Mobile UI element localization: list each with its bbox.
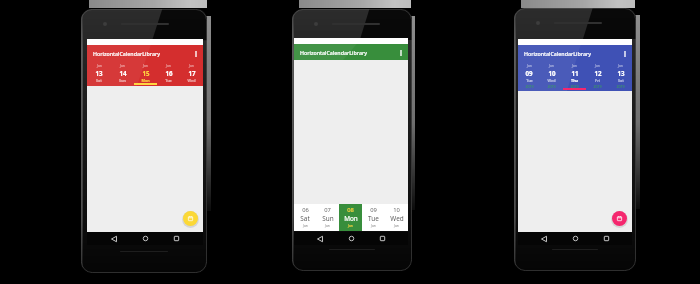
- staticText: 09: [525, 69, 533, 77]
- button[interactable]: Home: [570, 233, 581, 244]
- staticText: 11: [571, 69, 579, 77]
- staticText: Jan: [572, 63, 577, 67]
- button[interactable]: Jan: [586, 61, 609, 90]
- staticText: Tue: [165, 78, 172, 83]
- button[interactable]: Jan: [563, 61, 586, 90]
- button[interactable]: 08: [339, 204, 362, 231]
- button[interactable]: Recent apps: [171, 233, 182, 244]
- staticText: 2019: [570, 84, 579, 89]
- staticText: Jan: [166, 63, 171, 67]
- staticText: 10: [393, 206, 400, 214]
- button[interactable]: Jan: [134, 61, 157, 85]
- staticText: 09: [370, 206, 377, 214]
- button[interactable]: Jan: [157, 61, 180, 85]
- staticText: Sun: [322, 214, 334, 223]
- staticText: 15: [142, 69, 150, 77]
- staticText: 17: [188, 69, 196, 77]
- button[interactable]: Back: [314, 233, 325, 244]
- button[interactable]: More options: [190, 48, 201, 59]
- button[interactable]: Jan: [518, 61, 540, 90]
- staticText: 06: [302, 206, 309, 214]
- staticText: 07: [324, 206, 331, 214]
- staticText: Jan: [394, 223, 399, 227]
- staticText: Mon: [344, 214, 358, 223]
- button[interactable]: Back: [108, 233, 119, 244]
- staticText: HorizontalCalendarLibrary: [93, 50, 160, 57]
- button[interactable]: More options: [395, 47, 406, 58]
- staticText: Jan: [303, 223, 308, 227]
- staticText: Mon: [141, 78, 150, 83]
- staticText: Jan: [595, 63, 600, 67]
- staticText: Sat: [300, 214, 310, 223]
- staticText: Wed: [390, 214, 404, 223]
- staticText: Jan: [527, 63, 532, 67]
- button[interactable]: Home: [346, 233, 357, 244]
- staticText: Tue: [368, 214, 379, 223]
- button[interactable]: Home: [140, 233, 151, 244]
- staticText: Sun: [119, 78, 126, 83]
- button[interactable]: Jan: [180, 61, 203, 85]
- staticText: HorizontalCalendarLibrary: [524, 50, 591, 57]
- staticText: 10: [548, 69, 556, 77]
- button[interactable]: Jan: [111, 61, 134, 85]
- staticText: 14: [119, 69, 127, 77]
- staticText: Jan: [371, 223, 376, 227]
- staticText: Sat: [618, 78, 624, 83]
- staticText: Fri: [595, 78, 600, 83]
- staticText: Tue: [526, 78, 533, 83]
- staticText: Jan: [348, 223, 353, 227]
- staticText: 13: [95, 69, 103, 77]
- staticText: 2019: [525, 84, 534, 89]
- button[interactable]: Jan: [540, 61, 563, 90]
- button[interactable]: Recent apps: [377, 233, 388, 244]
- button[interactable]: Pick date: [612, 211, 627, 226]
- button[interactable]: 07: [316, 204, 339, 231]
- button[interactable]: More options: [619, 48, 630, 59]
- staticText: Jan: [618, 63, 623, 67]
- button[interactable]: 10: [385, 204, 408, 231]
- staticText: 13: [617, 69, 625, 77]
- staticText: Wed: [547, 78, 556, 83]
- staticText: 2019: [616, 84, 625, 89]
- button[interactable]: Jan: [87, 61, 111, 85]
- button[interactable]: Back: [538, 233, 549, 244]
- staticText: 16: [165, 69, 173, 77]
- button[interactable]: 09: [362, 204, 385, 231]
- staticText: 2019: [593, 84, 602, 89]
- staticText: HorizontalCalendarLibrary: [300, 49, 367, 56]
- staticText: Jan: [97, 63, 102, 67]
- button[interactable]: Pick date: [183, 211, 198, 226]
- staticText: 12: [594, 69, 602, 77]
- staticText: Jan: [189, 63, 194, 67]
- staticText: Sat: [96, 78, 102, 83]
- staticText: Jan: [120, 63, 125, 67]
- staticText: Jan: [325, 223, 330, 227]
- staticText: Jan: [143, 63, 148, 67]
- staticText: Thu: [571, 78, 578, 83]
- staticText: 2019: [547, 84, 556, 89]
- staticText: 08: [347, 206, 354, 214]
- button[interactable]: Jan: [609, 61, 632, 90]
- button[interactable]: 06: [294, 204, 316, 231]
- staticText: Jan: [549, 63, 554, 67]
- staticText: Wed: [187, 78, 196, 83]
- button[interactable]: Recent apps: [601, 233, 612, 244]
